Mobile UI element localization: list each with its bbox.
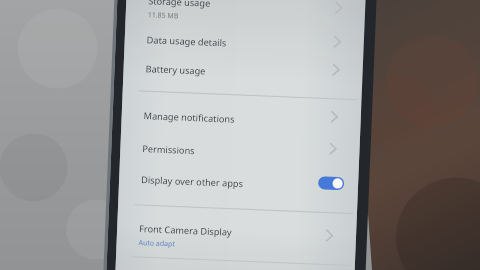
button[interactable]: App info settings screen photo: [0, 0, 480, 270]
